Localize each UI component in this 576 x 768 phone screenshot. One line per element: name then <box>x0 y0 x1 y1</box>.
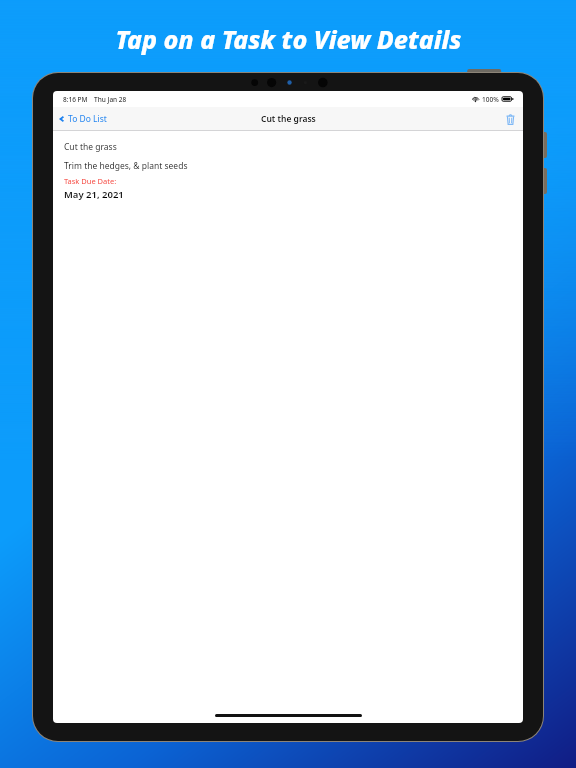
staticText: Tap on a Task to View Details <box>115 22 462 56</box>
staticText: To Do List <box>68 113 107 125</box>
staticText: 8:16 PM <box>63 95 88 104</box>
staticText: Cut the grass <box>64 141 117 153</box>
staticText: Trim the hedges, & plant seeds <box>64 160 188 172</box>
button[interactable]: To Do List <box>58 113 107 125</box>
staticText: May 21, 2021 <box>64 188 124 201</box>
staticText: Thu Jan 28 <box>94 95 127 104</box>
button[interactable]: Delete task <box>503 112 517 126</box>
staticText: 100% <box>482 95 499 104</box>
staticText: Task Due Date: <box>64 176 117 186</box>
staticText: Cut the grass <box>261 113 316 125</box>
